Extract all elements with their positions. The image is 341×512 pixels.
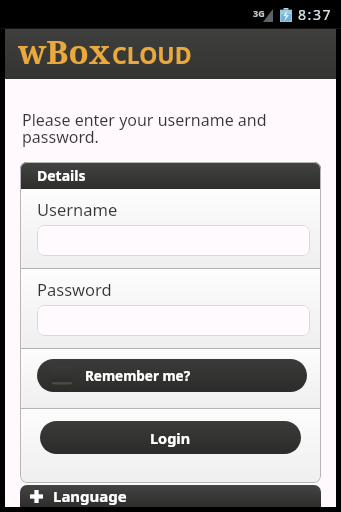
staticText: CLOUD bbox=[112, 39, 192, 70]
staticText: Details bbox=[37, 166, 86, 185]
staticText: wBox bbox=[18, 29, 111, 71]
button[interactable]: Remember me? bbox=[37, 359, 307, 392]
button[interactable]: Login bbox=[40, 421, 301, 454]
staticText: Login bbox=[150, 428, 191, 448]
staticText: Password bbox=[37, 278, 112, 300]
staticText: 8:37 bbox=[298, 5, 333, 24]
other: Expand Language bbox=[30, 490, 43, 503]
staticText: Username bbox=[37, 198, 118, 220]
button[interactable] bbox=[37, 305, 310, 336]
staticText: Please enter your username and password. bbox=[22, 109, 311, 147]
button[interactable] bbox=[37, 225, 310, 256]
staticText: Language bbox=[53, 486, 127, 506]
button[interactable]: Expand Language bbox=[20, 485, 321, 507]
staticText: 3G bbox=[253, 7, 265, 19]
staticText: Remember me? bbox=[85, 367, 191, 385]
